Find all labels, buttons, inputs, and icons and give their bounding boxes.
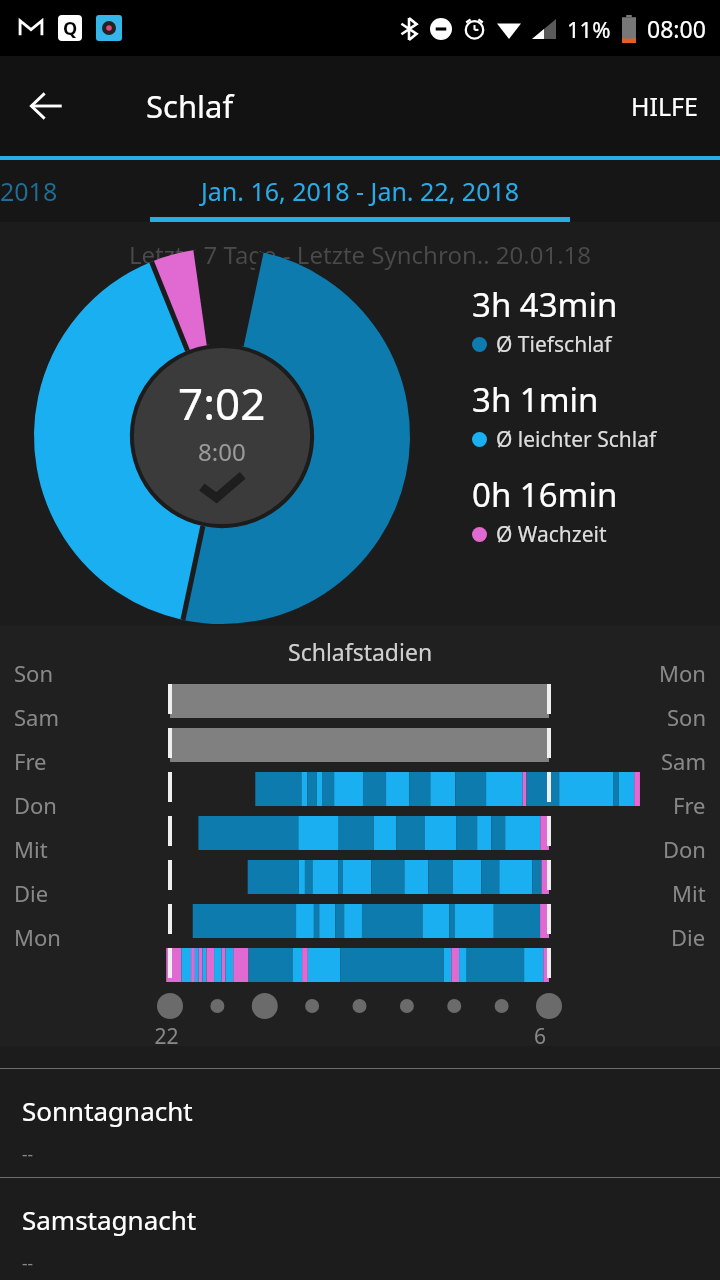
- staticText: 2018: [0, 174, 58, 208]
- staticText: Ø leichter Schlaf: [496, 425, 657, 454]
- staticText: 3h 1min: [472, 377, 599, 422]
- staticText: Ø Tiefschlaf: [496, 330, 612, 359]
- staticText: Fre: [14, 746, 47, 776]
- staticText: Sam: [661, 746, 706, 776]
- staticText: Mon: [14, 922, 61, 952]
- button[interactable]: Samstagnacht: [0, 1178, 720, 1280]
- staticText: Sonntagnacht: [22, 1093, 193, 1128]
- button[interactable]: Sonntagnacht: [0, 1069, 720, 1177]
- staticText: 3h 43min: [472, 282, 618, 327]
- staticText: Sam: [14, 702, 59, 732]
- staticText: Mit: [14, 834, 48, 864]
- staticText: 6: [534, 1022, 547, 1046]
- staticText: Die: [671, 922, 706, 952]
- staticText: Don: [14, 790, 57, 820]
- staticText: Son: [14, 658, 53, 688]
- staticText: Son: [667, 702, 706, 732]
- button[interactable]: HILFE: [609, 69, 720, 143]
- staticText: 0h 16min: [472, 472, 618, 517]
- staticText: Q: [63, 16, 78, 41]
- staticText: Fre: [673, 790, 706, 820]
- staticText: Schlaf: [146, 85, 234, 127]
- staticText: Samstagnacht: [22, 1202, 197, 1237]
- staticText: 8:00: [198, 435, 246, 468]
- staticText: Die: [14, 878, 49, 908]
- staticText: 08:00: [647, 13, 706, 44]
- staticText: HILFE: [631, 89, 698, 123]
- button[interactable]: Zurück: [16, 76, 76, 136]
- staticText: 7:02: [178, 373, 266, 433]
- staticText: Mon: [659, 658, 706, 688]
- staticText: --: [22, 1251, 33, 1274]
- staticText: Ø Wachzeit: [496, 520, 607, 549]
- staticText: Jan. 16, 2018 - Jan. 22, 2018: [201, 174, 520, 208]
- staticText: --: [22, 1142, 33, 1165]
- button[interactable]: Jan. 16, 2018 - Jan. 22, 2018: [201, 174, 520, 208]
- staticText: Mit: [672, 878, 706, 908]
- staticText: Don: [663, 834, 706, 864]
- staticText: 11%: [567, 14, 611, 44]
- staticText: Schlafstadien: [288, 636, 433, 667]
- staticText: Letzte 7 Tage - Letzte Synchron.. 20.01.…: [129, 238, 592, 271]
- staticText: 22: [154, 1022, 179, 1046]
